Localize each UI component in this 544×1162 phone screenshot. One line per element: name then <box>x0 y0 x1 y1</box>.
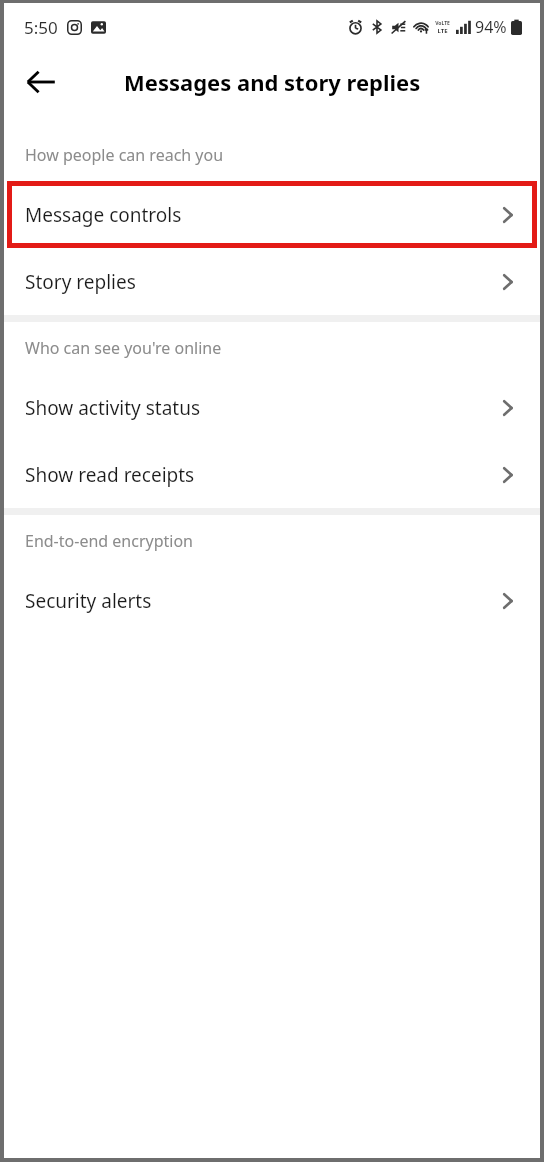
button[interactable]: Show activity status <box>4 374 540 441</box>
staticText: How people can reach you <box>25 144 224 166</box>
staticText: Who can see you're online <box>25 337 222 359</box>
button[interactable]: Story replies <box>4 248 540 315</box>
staticText: Story replies <box>25 269 502 295</box>
staticText: Message controls <box>25 202 502 228</box>
staticText: 5:50 <box>24 16 58 39</box>
staticText: LTE <box>437 27 448 35</box>
staticText: Show read receipts <box>25 462 502 488</box>
staticText: End-to-end encryption <box>25 530 193 552</box>
staticText: Security alerts <box>25 588 502 614</box>
button[interactable]: Show read receipts <box>4 441 540 508</box>
button[interactable]: Security alerts <box>4 567 540 634</box>
staticText: Messages and story replies <box>124 67 421 97</box>
button[interactable]: Back <box>14 55 68 109</box>
staticText: VoLTE <box>435 20 450 27</box>
staticText: Show activity status <box>25 395 502 421</box>
button[interactable]: Message controls <box>4 181 540 248</box>
staticText: 94% <box>475 16 507 38</box>
